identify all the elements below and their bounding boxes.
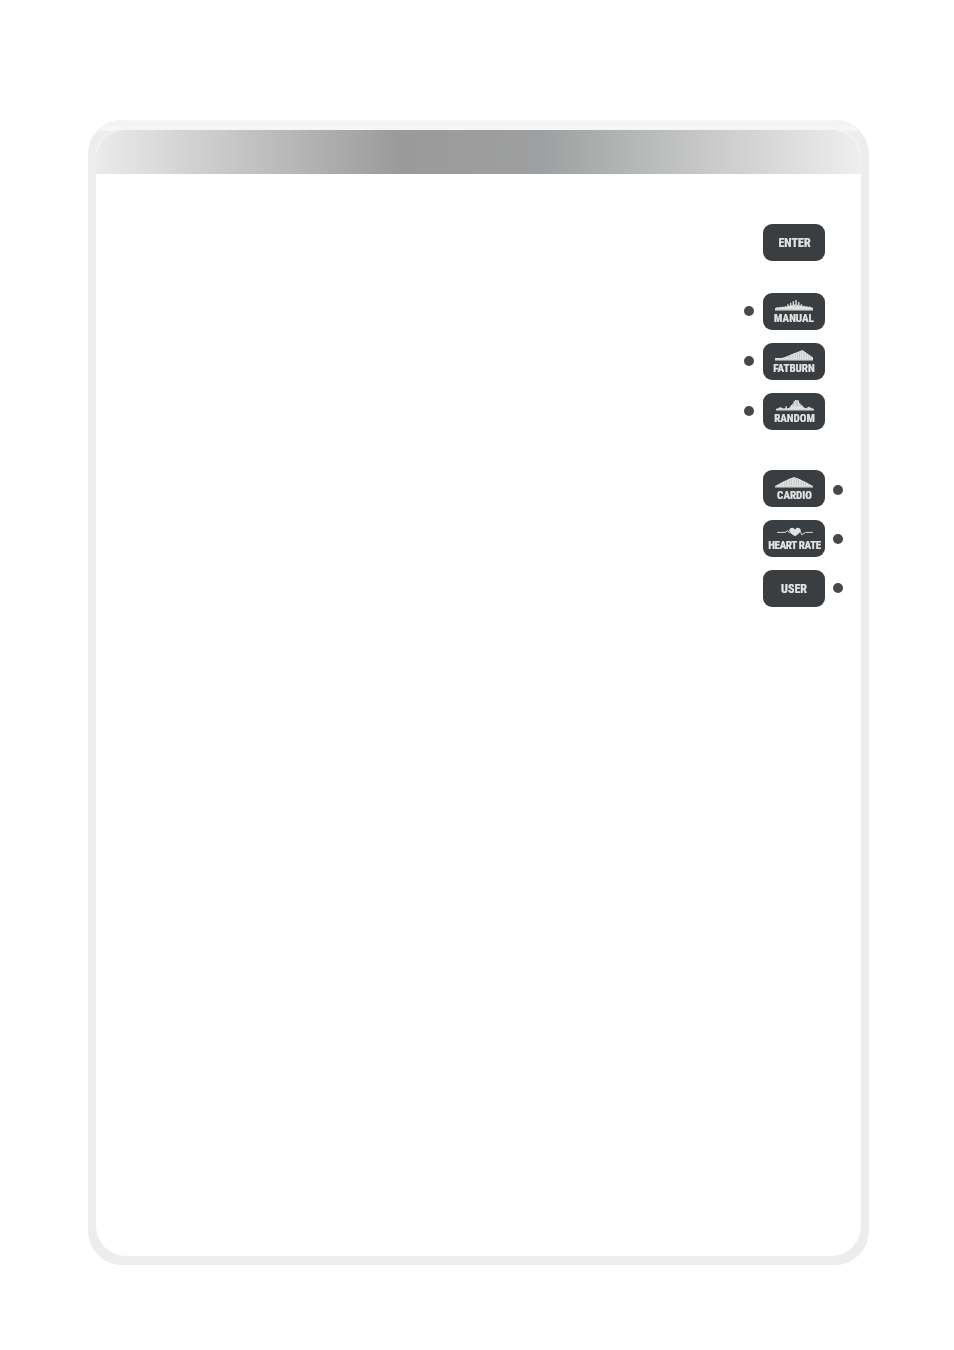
button[interactable]: RANDOM [763, 393, 825, 430]
staticText: ENTER [778, 236, 811, 250]
button[interactable]: FATBURN [763, 343, 825, 380]
button[interactable]: ENTER [763, 224, 825, 261]
button[interactable]: HEART RATE [763, 520, 825, 557]
staticText: CARDIO [777, 489, 812, 502]
button[interactable]: MANUAL [763, 293, 825, 330]
staticText: HEART RATE [768, 539, 821, 552]
staticText: RANDOM [774, 412, 815, 425]
staticText: FATBURN [773, 362, 815, 375]
button[interactable]: CARDIO [763, 470, 825, 507]
button[interactable]: USER [763, 570, 825, 607]
staticText: MANUAL [774, 312, 814, 325]
staticText: USER [781, 582, 807, 596]
